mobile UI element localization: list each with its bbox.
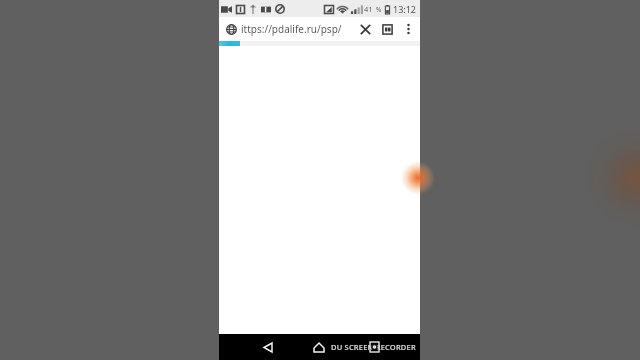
staticText: % [376,5,382,14]
staticText: 13:12 [393,3,417,15]
button[interactable]: More options [398,19,418,39]
button[interactable]: ittps://pdalife.ru/psp/igry [241,17,352,41]
staticText: 41 [364,4,373,14]
button[interactable]: Home [306,334,332,360]
button[interactable]: Switch tabs [376,18,398,40]
staticText: DU SCREEN RECORDER [331,342,416,352]
button[interactable]: Site information [223,21,239,37]
staticText: ittps://pdalife.ru/psp/igry [241,22,352,36]
button[interactable]: Stop loading [354,18,376,40]
button[interactable]: Back [255,334,281,360]
